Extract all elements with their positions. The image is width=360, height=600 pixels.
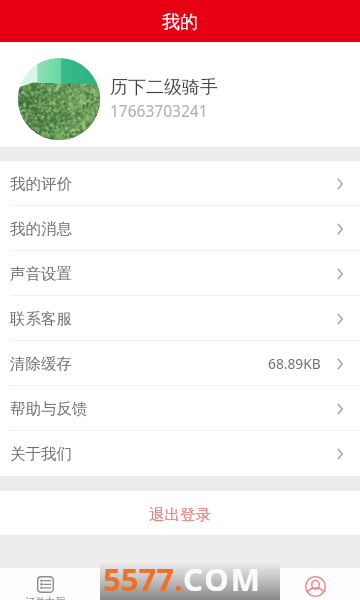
other: 我的 (305, 576, 326, 597)
staticText: 5577. (103, 558, 183, 598)
staticText: 我的评价 (10, 174, 72, 194)
staticText: 联系客服 (10, 309, 72, 329)
button[interactable]: 退出登录 (0, 491, 360, 535)
staticText: 订单大厅 (25, 595, 65, 600)
staticText: 我的订单 (115, 595, 155, 600)
other: 我的订单 (127, 576, 144, 593)
other: 订单大厅 (37, 576, 54, 593)
staticText: 声音设置 (10, 264, 72, 284)
staticText: 关于我们 (10, 444, 72, 464)
staticText: 我的消息 (10, 219, 72, 239)
staticText: 清除缓存 (10, 354, 72, 374)
staticText: 消息 (215, 595, 235, 600)
other: 消息 (217, 576, 234, 593)
button[interactable]: 历下二级骑手 (0, 42, 360, 147)
button[interactable]: 我的评价 (0, 161, 360, 206)
staticText: 68.89KB (268, 354, 321, 373)
button[interactable]: 我的 (270, 568, 360, 600)
button[interactable]: 联系客服 (0, 296, 360, 341)
staticText: 历下二级骑手 (110, 76, 218, 99)
button[interactable]: 关于我们 (0, 431, 360, 476)
staticText: 17663703241 (110, 100, 208, 121)
staticText: COM (183, 558, 263, 598)
button[interactable]: 消息 (180, 568, 270, 600)
staticText: 帮助与反馈 (10, 399, 88, 419)
button[interactable]: 帮助与反馈 (0, 386, 360, 431)
button[interactable]: 我的订单 (90, 568, 180, 600)
button[interactable]: 声音设置 (0, 251, 360, 296)
button[interactable]: 订单大厅 (0, 568, 90, 600)
button[interactable]: 我的消息 (0, 206, 360, 251)
button[interactable]: 清除缓存 (0, 341, 360, 386)
staticText: 我的 (162, 11, 198, 34)
staticText: 退出登录 (149, 505, 211, 525)
